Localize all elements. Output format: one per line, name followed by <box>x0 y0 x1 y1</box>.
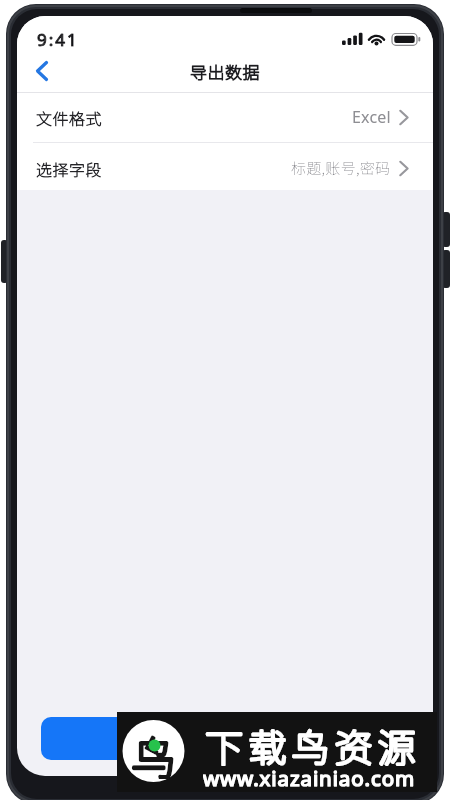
staticText: 标题,账号,密码 <box>291 157 391 179</box>
staticText: 选择字段 <box>36 157 103 180</box>
staticText: 选择字段 <box>36 157 103 180</box>
staticText: 鸟 <box>131 723 177 779</box>
staticText: 文件格式 <box>36 106 103 129</box>
staticText: 下载鸟资源 <box>205 718 422 766</box>
staticText: 下载鸟资源 <box>205 718 422 766</box>
staticText: www.xiazainiao.com <box>203 764 416 790</box>
staticText: 文件格式 <box>36 106 103 129</box>
staticText: 导出数据 <box>190 59 260 84</box>
staticText: Excel <box>352 106 391 128</box>
staticText: 9:41 <box>37 28 79 51</box>
staticText: 导出数据 <box>190 59 260 84</box>
staticText: 9:41 <box>37 28 79 51</box>
staticText: www.xiazainiao.com <box>203 764 416 790</box>
staticText: 鸟 <box>131 723 177 779</box>
